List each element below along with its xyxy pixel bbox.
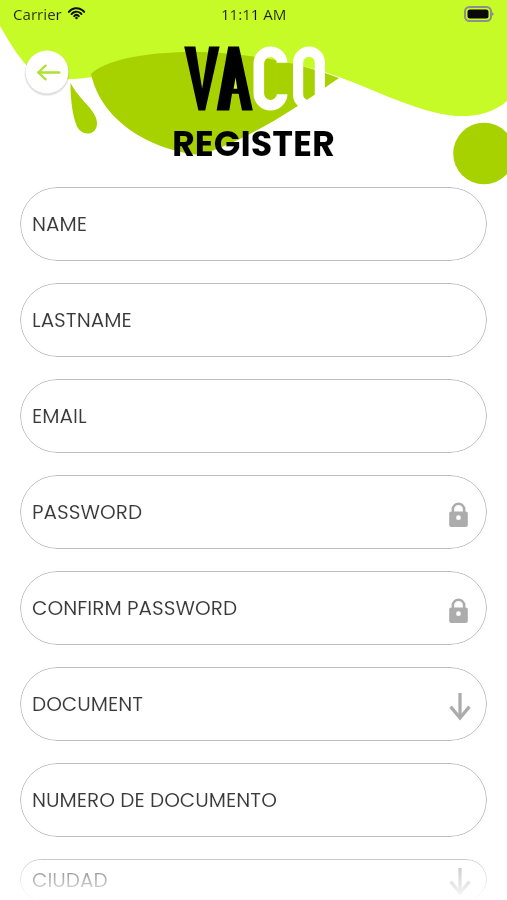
button[interactable]: EMAIL <box>20 379 487 453</box>
other: Toggle password visibility <box>447 598 470 623</box>
button[interactable]: CIUDAD <box>20 859 487 900</box>
staticText: Carrier <box>13 4 62 24</box>
button[interactable]: LASTNAME <box>20 283 487 357</box>
button[interactable]: CONFIRM PASSWORD <box>20 571 487 645</box>
staticText: NAME <box>32 210 88 238</box>
staticText: 11:11 AM <box>221 4 287 24</box>
other: Expand <box>449 693 471 718</box>
button[interactable]: NAME <box>20 187 487 261</box>
staticText: CONFIRM PASSWORD <box>32 594 238 622</box>
staticText: LASTNAME <box>32 306 132 334</box>
staticText: EMAIL <box>32 402 87 430</box>
staticText: PASSWORD <box>32 498 143 526</box>
other: Expand <box>449 868 471 893</box>
staticText: CIUDAD <box>32 866 108 894</box>
button[interactable]: PASSWORD <box>20 475 487 549</box>
staticText: REGISTER <box>172 119 335 168</box>
other: Toggle password visibility <box>447 502 470 527</box>
button[interactable]: DOCUMENT <box>20 667 487 741</box>
button[interactable]: NUMERO DE DOCUMENTO <box>20 763 487 837</box>
button[interactable]: Back <box>20 45 74 99</box>
staticText: DOCUMENT <box>32 690 144 718</box>
staticText: NUMERO DE DOCUMENTO <box>32 786 277 814</box>
